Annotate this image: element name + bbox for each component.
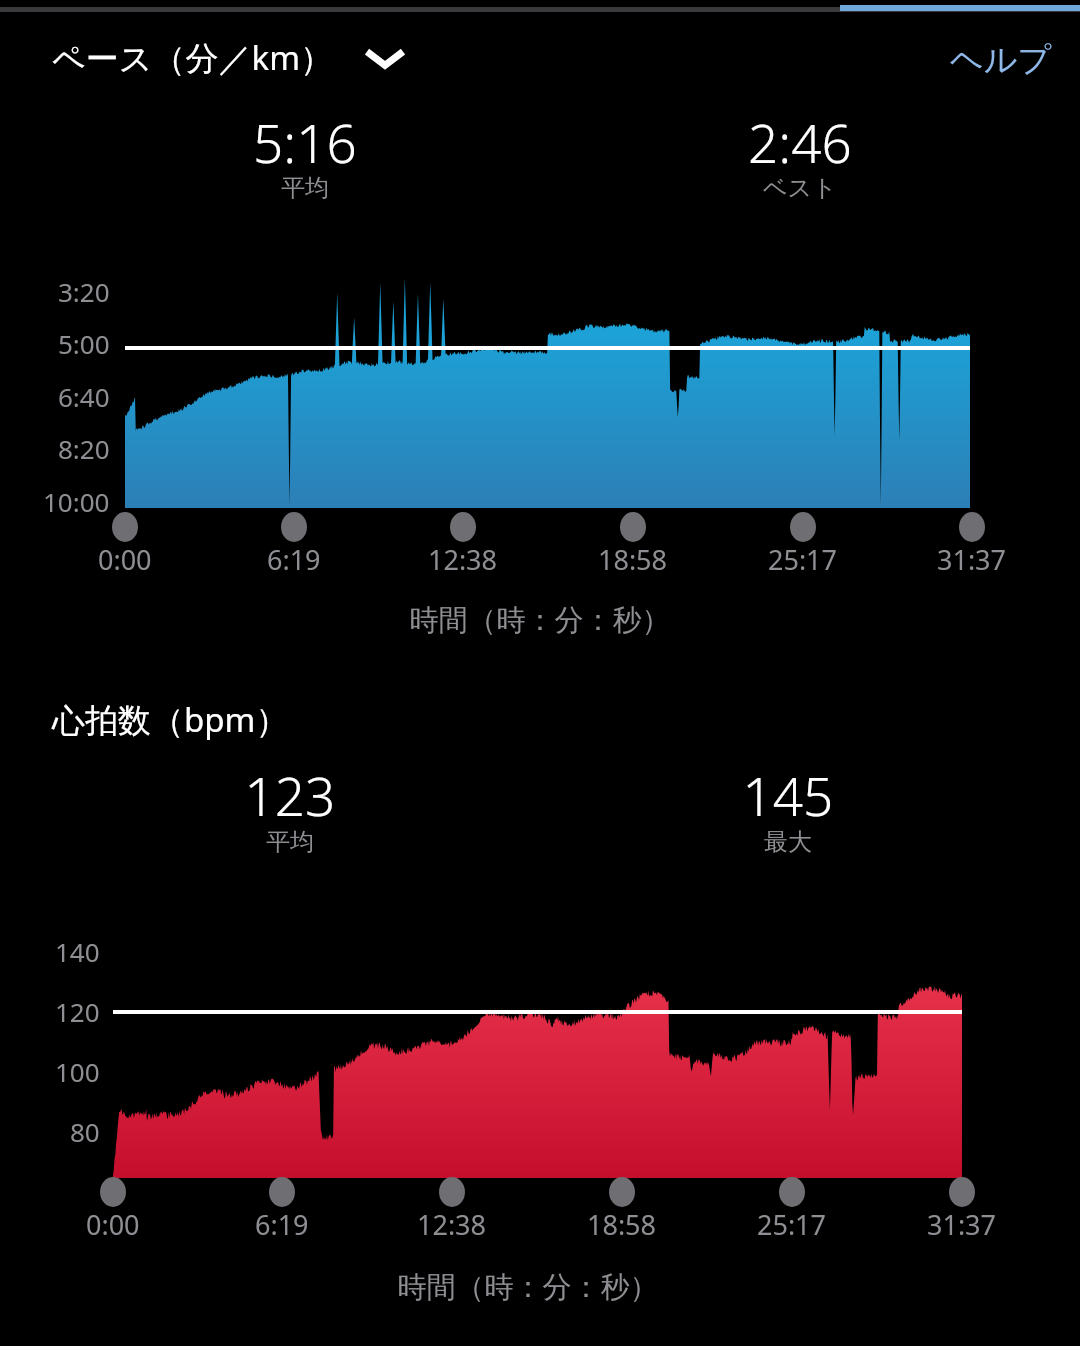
button[interactable]: ヘルプ: [915, 28, 1065, 88]
button[interactable]: ペース（分／km）を選択: [40, 28, 460, 88]
